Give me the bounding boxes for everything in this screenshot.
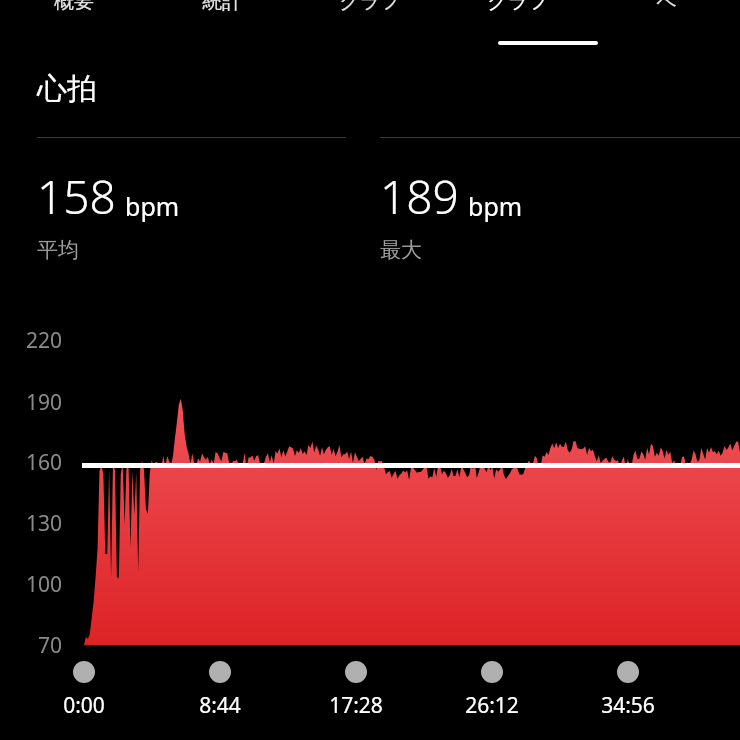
staticText: 17:28 xyxy=(311,691,401,720)
button[interactable]: グラフ xyxy=(444,0,592,16)
staticText: グラフ xyxy=(339,0,401,14)
staticText: 平均 xyxy=(37,237,79,263)
staticText: bpm xyxy=(125,189,180,223)
button[interactable]: 概要 xyxy=(0,0,148,16)
staticText: 8:44 xyxy=(175,691,265,720)
staticText: 26:12 xyxy=(447,691,537,720)
staticText: 158 xyxy=(37,165,116,228)
staticText: 概要 xyxy=(54,0,94,14)
staticText: 心拍 xyxy=(37,70,97,108)
staticText: グラフ xyxy=(487,0,549,14)
staticText: ペ xyxy=(656,0,677,14)
button[interactable]: Lap marker 34:56 xyxy=(617,661,639,683)
button[interactable]: 189 xyxy=(380,137,740,263)
staticText: 70 xyxy=(0,631,62,660)
staticText: 0:00 xyxy=(39,691,129,720)
button[interactable]: Lap marker 17:28 xyxy=(345,661,367,683)
button[interactable]: Lap marker 8:44 xyxy=(209,661,231,683)
button[interactable]: ペ xyxy=(592,0,740,16)
staticText: 統計 xyxy=(202,0,242,14)
staticText: 190 xyxy=(0,388,62,417)
staticText: bpm xyxy=(468,189,523,223)
staticText: 最大 xyxy=(380,237,422,263)
button[interactable]: グラフ xyxy=(296,0,444,16)
staticText: 34:56 xyxy=(583,691,673,720)
button[interactable]: 158 xyxy=(37,137,346,263)
button[interactable]: Lap marker 0:00 xyxy=(73,661,95,683)
button[interactable]: Lap marker 26:12 xyxy=(481,661,503,683)
staticText: 160 xyxy=(0,448,62,477)
staticText: 189 xyxy=(380,165,459,228)
staticText: 220 xyxy=(0,326,62,355)
staticText: 100 xyxy=(0,570,62,599)
button[interactable]: 統計 xyxy=(148,0,296,16)
staticText: 130 xyxy=(0,509,62,538)
